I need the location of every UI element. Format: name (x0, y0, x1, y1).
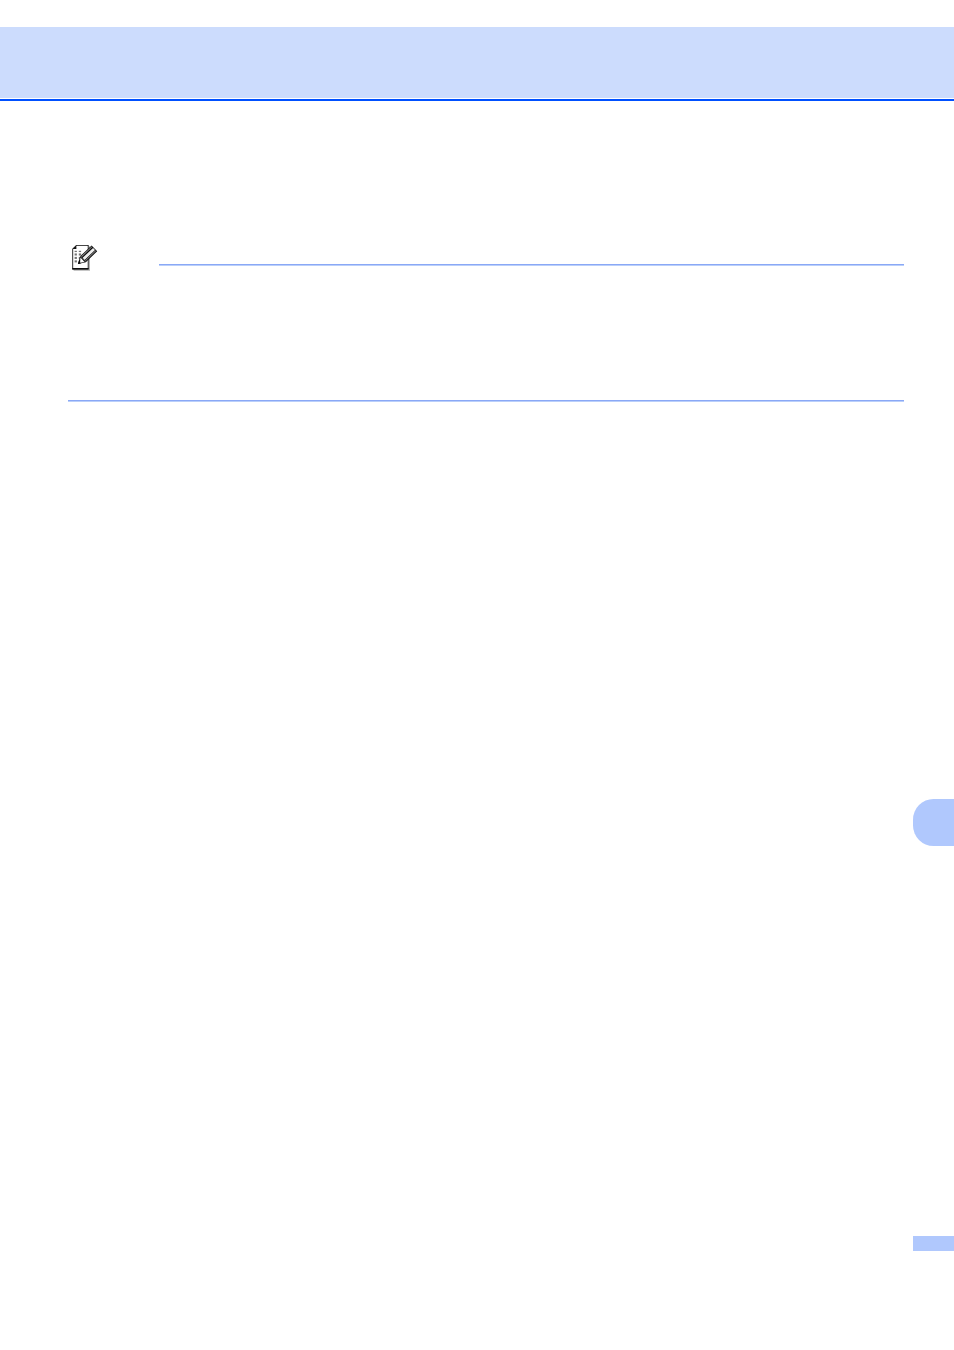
button[interactable]: Chapter tab (913, 799, 954, 846)
other: Note (70, 242, 100, 272)
